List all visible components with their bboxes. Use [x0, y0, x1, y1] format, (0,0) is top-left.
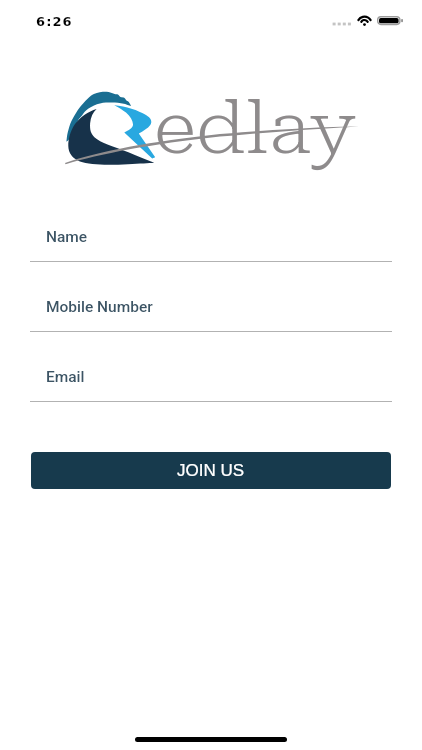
- staticText: Name: [46, 228, 88, 246]
- staticText: edlay: [154, 85, 356, 170]
- button[interactable]: Mobile Number: [30, 283, 392, 331]
- staticText: Email: [46, 368, 85, 386]
- staticText: Mobile Number: [46, 298, 153, 316]
- staticText: JOIN US: [177, 461, 245, 480]
- staticText: 6:26: [36, 14, 73, 29]
- button[interactable]: JOIN US: [31, 452, 391, 489]
- button[interactable]: Name: [30, 213, 392, 261]
- button[interactable]: Email: [30, 353, 392, 401]
